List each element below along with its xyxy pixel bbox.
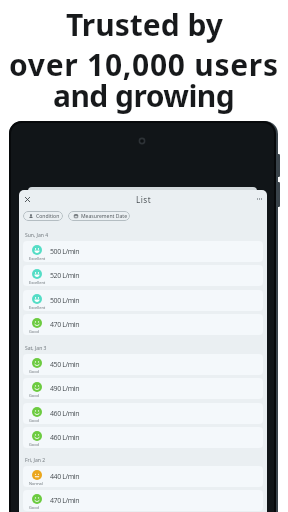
button[interactable]: Good xyxy=(23,403,263,424)
staticText: Good xyxy=(29,329,39,334)
staticText: 460 L/min xyxy=(50,433,80,443)
staticText: Condition xyxy=(36,213,60,220)
staticText: List xyxy=(136,194,152,205)
staticText: Excellent xyxy=(29,305,46,310)
staticText: over 10,000 users xyxy=(9,44,279,85)
button[interactable]: Good xyxy=(23,314,263,335)
staticText: Good xyxy=(29,369,39,374)
staticText: and growing xyxy=(53,75,235,116)
button[interactable]: Condition xyxy=(23,211,63,221)
button[interactable]: Good xyxy=(23,378,263,399)
staticText: Excellent xyxy=(29,280,46,285)
staticText: 460 L/min xyxy=(50,409,80,419)
staticText: 440 L/min xyxy=(50,472,80,482)
staticText: Good xyxy=(29,505,39,510)
staticText: Fri, Jan 2 xyxy=(25,457,46,464)
staticText: Normal xyxy=(29,481,43,486)
button[interactable]: Excellent xyxy=(23,265,263,286)
staticText: Measurement Date xyxy=(81,213,128,220)
staticText: Sat, Jan 3 xyxy=(25,345,47,352)
staticText: 500 L/min xyxy=(50,296,80,306)
button[interactable]: Close xyxy=(21,193,33,205)
button[interactable]: Excellent xyxy=(23,290,263,311)
button[interactable]: Excellent xyxy=(23,241,263,262)
staticText: Trusted by xyxy=(66,4,223,45)
staticText: Good xyxy=(29,418,39,423)
button[interactable]: More options xyxy=(253,193,265,205)
button[interactable]: Measurement Date xyxy=(68,211,130,221)
button[interactable]: Normal xyxy=(23,466,263,487)
button[interactable]: Good xyxy=(23,427,263,448)
staticText: 520 L/min xyxy=(50,271,80,281)
staticText: Excellent xyxy=(29,256,46,261)
staticText: 450 L/min xyxy=(50,360,80,370)
button[interactable]: Good xyxy=(23,490,263,511)
staticText: Good xyxy=(29,393,39,398)
staticText: 470 L/min xyxy=(50,496,80,506)
staticText: Sun, Jan 4 xyxy=(25,232,48,239)
button[interactable]: Good xyxy=(23,354,263,375)
staticText: 490 L/min xyxy=(50,384,80,394)
staticText: 500 L/min xyxy=(50,247,80,257)
staticText: Good xyxy=(29,442,39,447)
staticText: 470 L/min xyxy=(50,320,80,330)
